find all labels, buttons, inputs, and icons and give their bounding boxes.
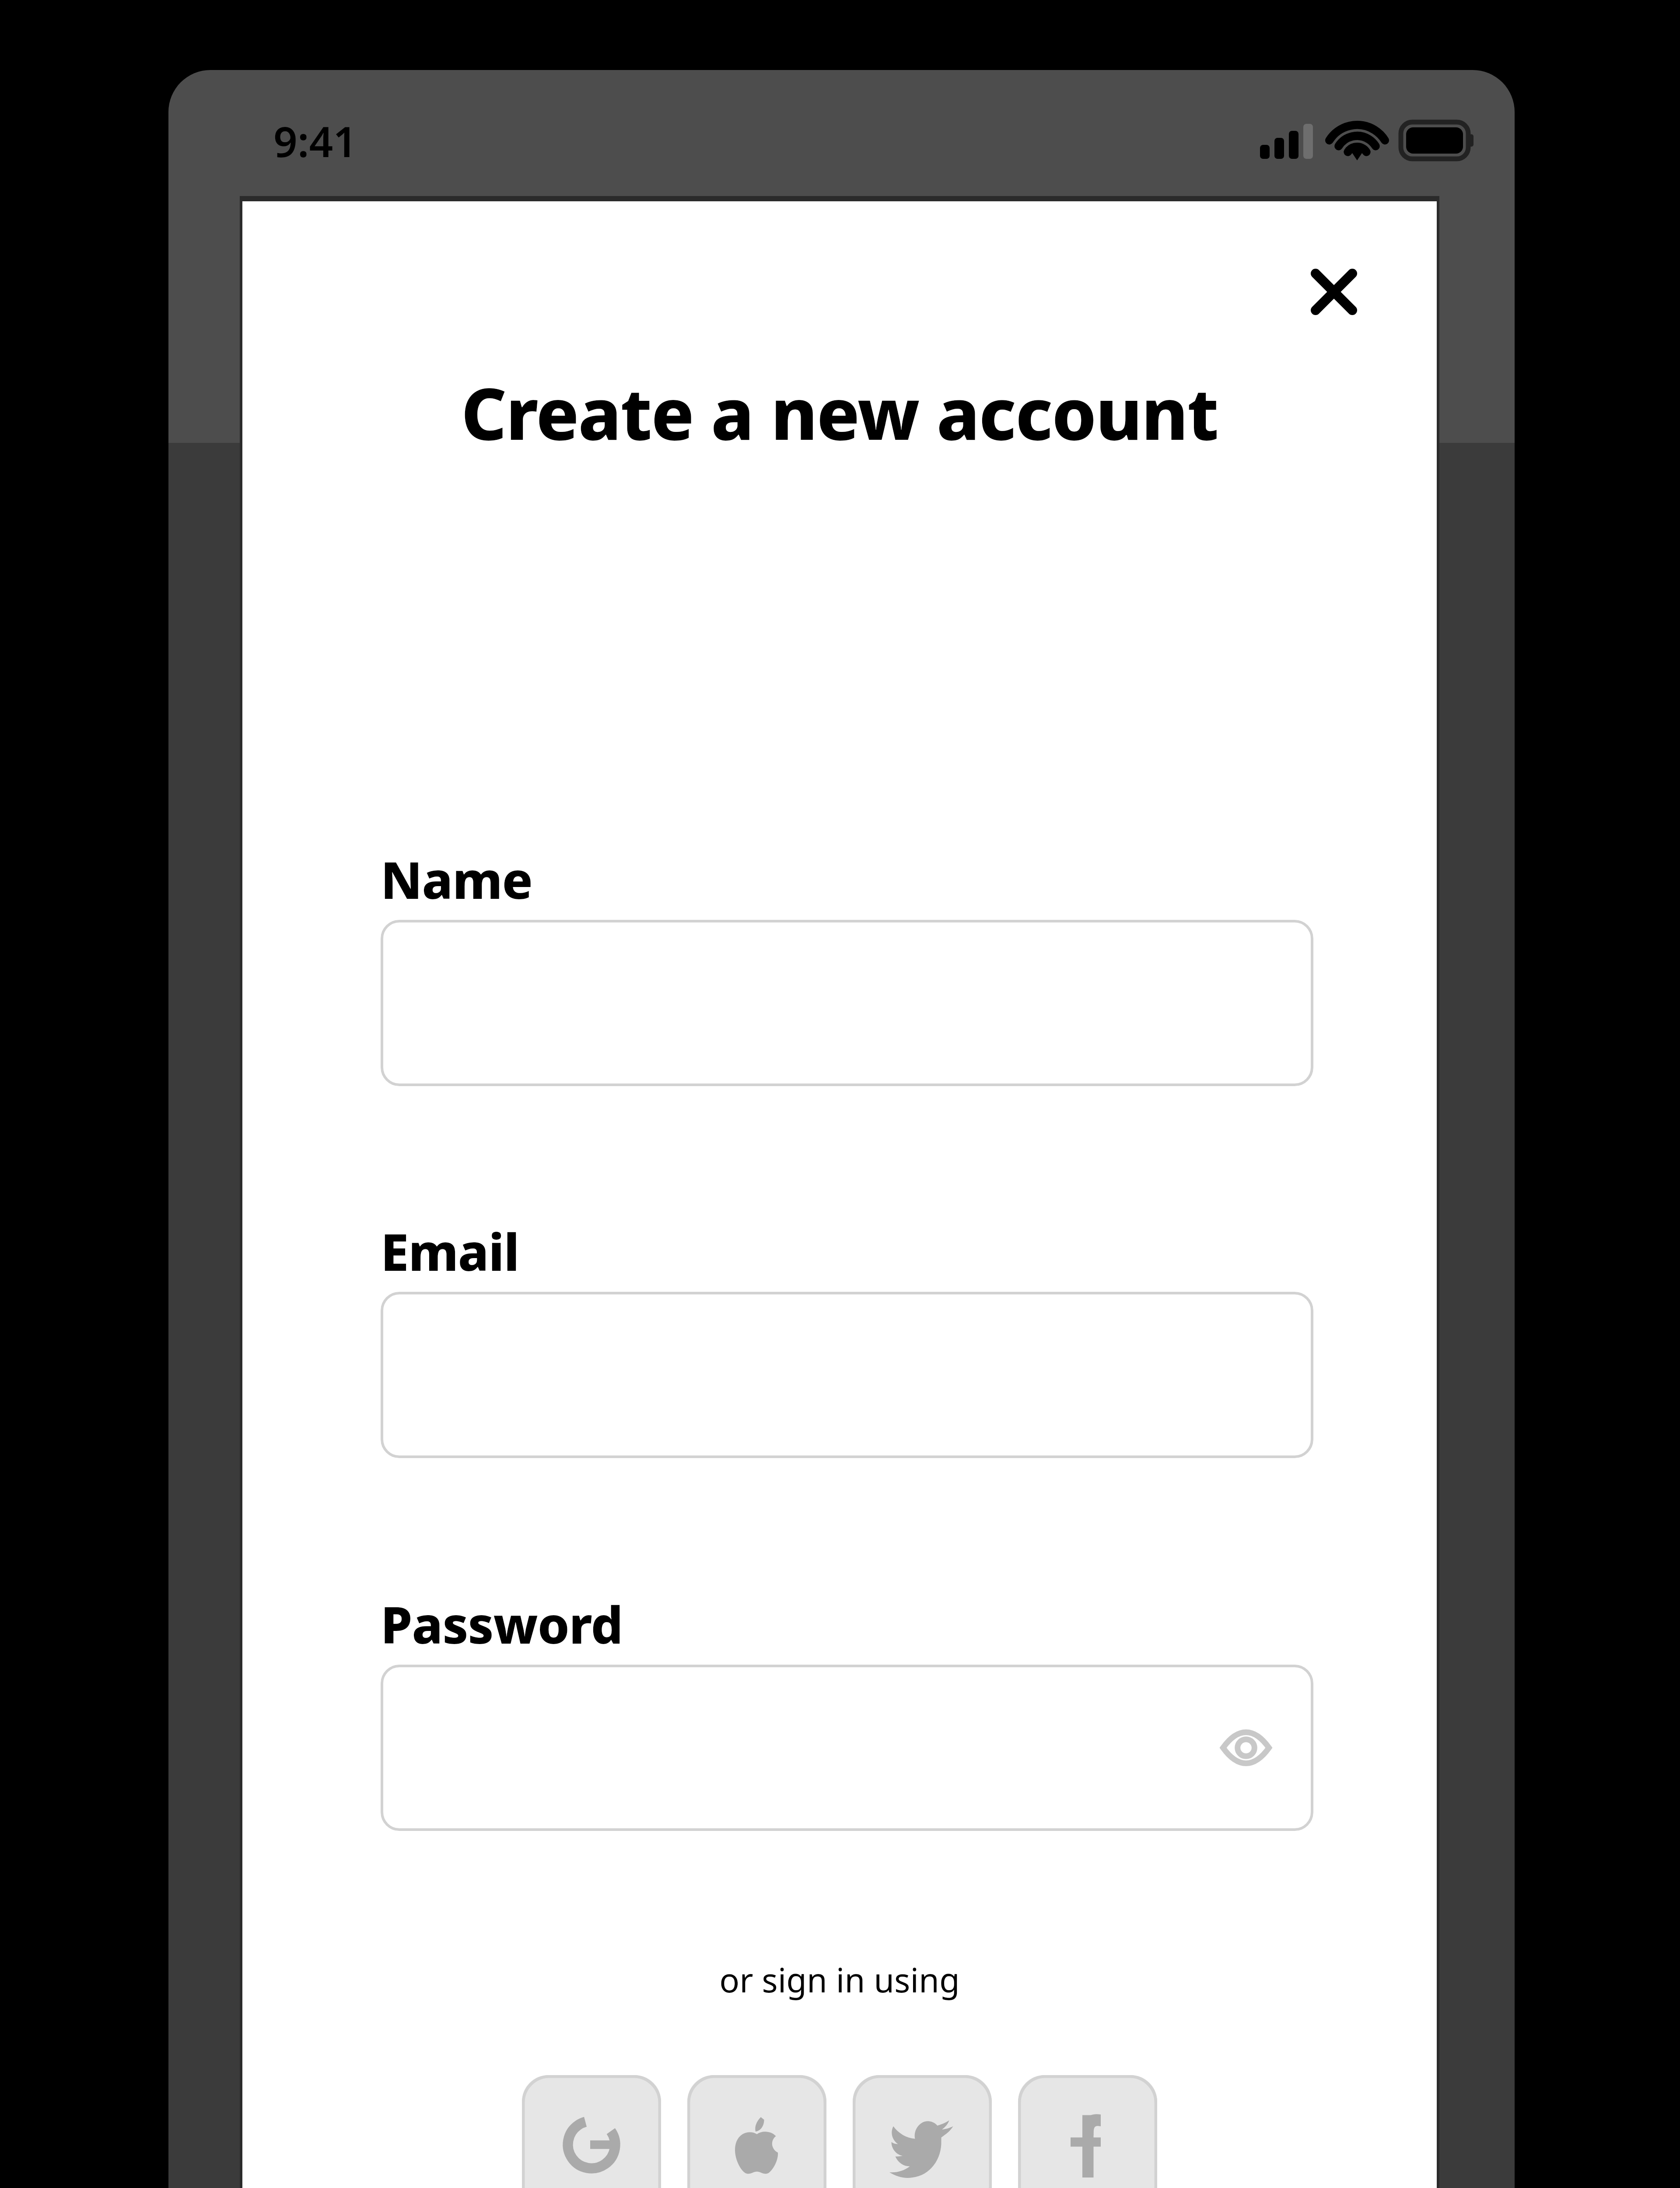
button[interactable]: Close (1284, 242, 1384, 342)
button[interactable]: Email input (381, 1292, 1313, 1458)
button[interactable]: Sign in with Google (522, 2075, 661, 2188)
staticText: or sign in using (242, 1957, 1437, 2002)
staticText: Password (381, 1589, 623, 1659)
button[interactable]: Name input (381, 920, 1313, 1086)
button[interactable]: Sign in with Facebook (1018, 2075, 1157, 2188)
button[interactable]: Sign in with Apple (687, 2075, 826, 2188)
button[interactable]: Password input (381, 1665, 1313, 1831)
button[interactable]: Sign in with Twitter (853, 2075, 992, 2188)
staticText: 9:41 (273, 112, 357, 169)
button[interactable]: Show password (1215, 1717, 1277, 1778)
staticText: Create a new account (242, 364, 1437, 461)
staticText: Name (381, 845, 533, 914)
staticText: Email (381, 1217, 519, 1286)
